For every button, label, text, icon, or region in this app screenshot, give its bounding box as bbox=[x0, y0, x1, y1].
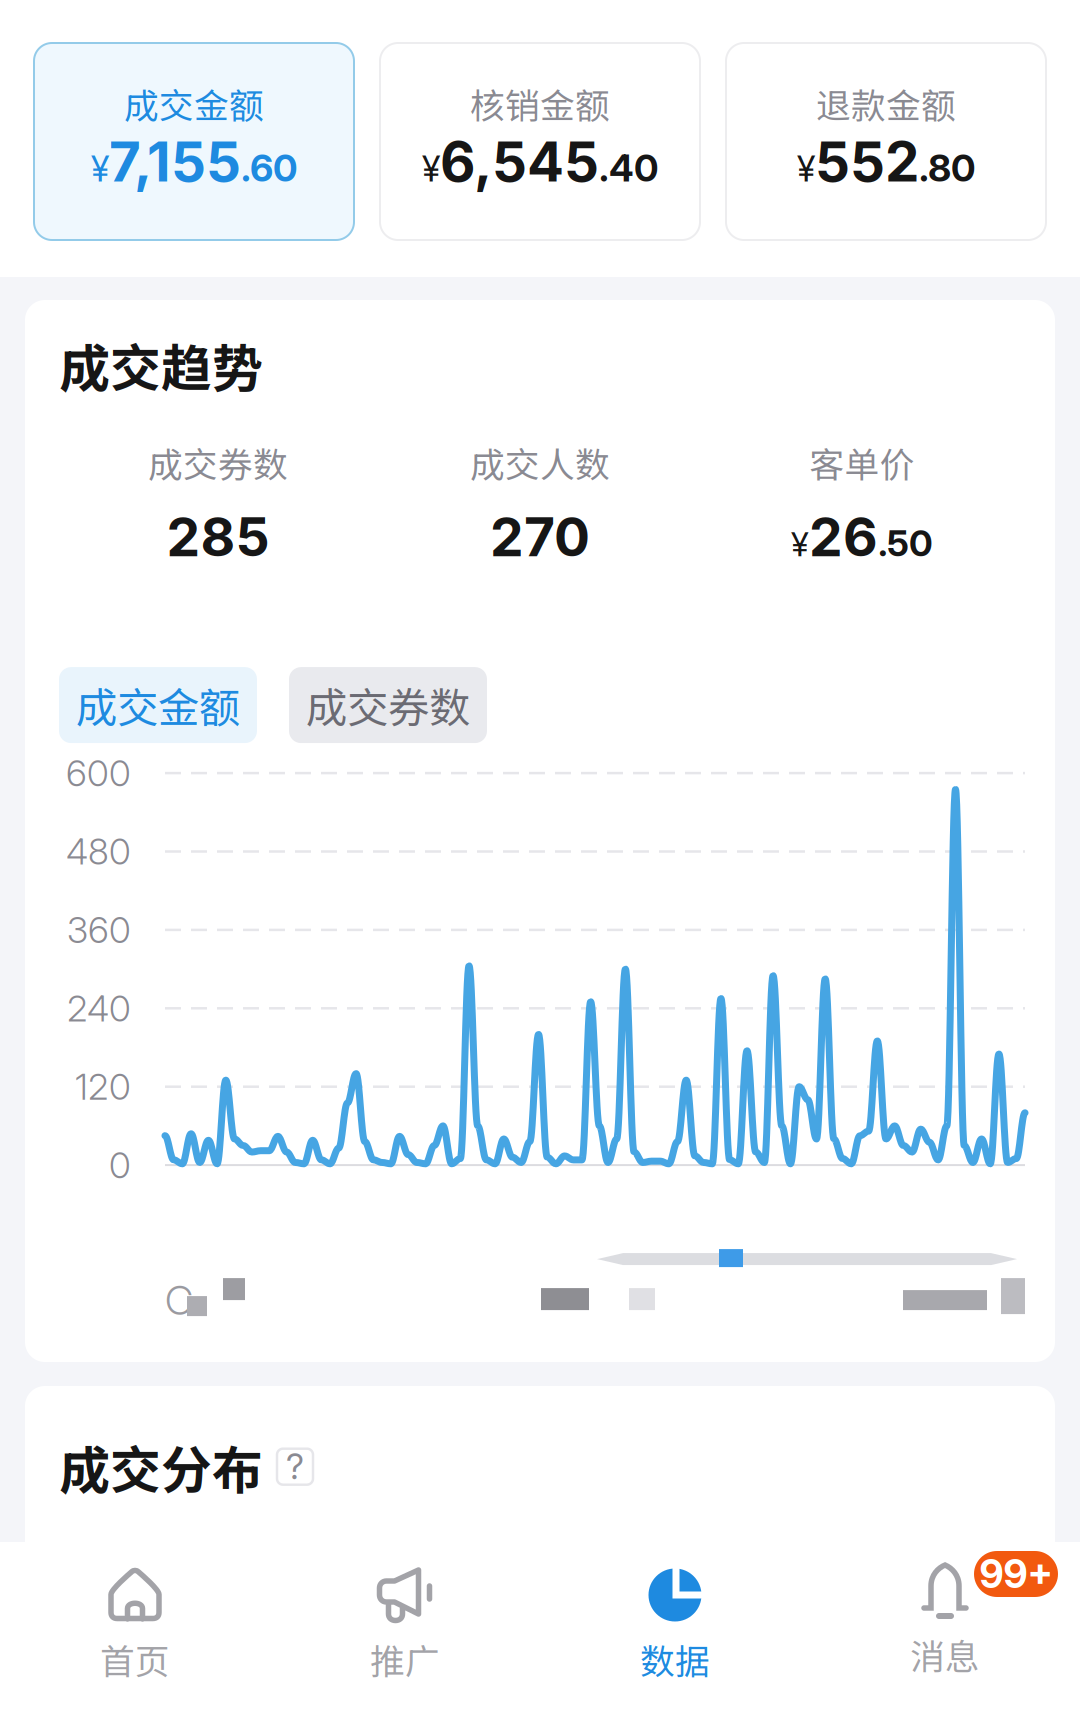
staticText: 推广 bbox=[370, 1634, 440, 1684]
button[interactable]: 消息 bbox=[810, 1551, 1080, 1701]
staticText: 360 bbox=[67, 908, 131, 952]
button[interactable]: 推广 bbox=[270, 1556, 540, 1706]
staticText: 480 bbox=[66, 830, 131, 873]
staticText: 285 bbox=[166, 505, 269, 569]
button[interactable]: 成交券数 bbox=[289, 667, 487, 743]
staticText: 核销金额 bbox=[470, 78, 610, 128]
staticText: ? bbox=[286, 1446, 304, 1488]
staticText: 120 bbox=[75, 1065, 131, 1108]
staticText: 成交金额 bbox=[76, 675, 240, 735]
staticText: ¥ bbox=[791, 524, 809, 564]
button[interactable]: 成交金额 bbox=[34, 43, 354, 240]
button[interactable]: 退款金额 bbox=[726, 43, 1046, 240]
button[interactable]: 首页 bbox=[0, 1556, 270, 1706]
staticText: .80 bbox=[919, 145, 975, 190]
staticText: 成交金额 bbox=[124, 78, 264, 128]
staticText: .60 bbox=[241, 145, 297, 190]
staticText: 0 bbox=[109, 1143, 131, 1187]
staticText: ¥ bbox=[797, 148, 815, 190]
staticText: ¥ bbox=[91, 148, 109, 190]
staticText: 首页 bbox=[100, 1634, 170, 1684]
staticText: C bbox=[165, 1276, 193, 1324]
button[interactable]: 核销金额 bbox=[380, 43, 700, 240]
button[interactable] bbox=[296, 1549, 496, 1623]
staticText: 7,155 bbox=[109, 128, 241, 195]
staticText: 客单价 bbox=[809, 437, 914, 488]
staticText: 成交趋势 bbox=[59, 328, 263, 401]
button[interactable]: 成交金额 bbox=[59, 667, 257, 743]
staticText: 成交券数 bbox=[306, 675, 470, 735]
staticText: 270 bbox=[490, 505, 590, 569]
staticText: 消息 bbox=[910, 1629, 980, 1679]
staticText: 成交分布 bbox=[59, 1430, 263, 1503]
staticText: 552 bbox=[815, 128, 919, 195]
staticText: 600 bbox=[66, 751, 131, 795]
staticText: 数据 bbox=[640, 1634, 710, 1684]
staticText: 99+ bbox=[979, 1551, 1052, 1597]
staticText: .40 bbox=[599, 145, 658, 190]
staticText: ¥ bbox=[422, 148, 440, 190]
staticText: 240 bbox=[67, 986, 131, 1030]
staticText: 26 bbox=[809, 505, 878, 569]
staticText: 退款金额 bbox=[816, 78, 956, 128]
button[interactable]: 数据 bbox=[540, 1556, 810, 1706]
button[interactable] bbox=[59, 1549, 267, 1623]
staticText: 成交券数 bbox=[148, 437, 288, 488]
staticText: 6,545 bbox=[440, 128, 599, 195]
staticText: .50 bbox=[878, 521, 933, 565]
staticText: 成交人数 bbox=[470, 437, 610, 488]
button[interactable]: 说明 bbox=[277, 1449, 313, 1485]
button[interactable] bbox=[527, 1549, 726, 1623]
